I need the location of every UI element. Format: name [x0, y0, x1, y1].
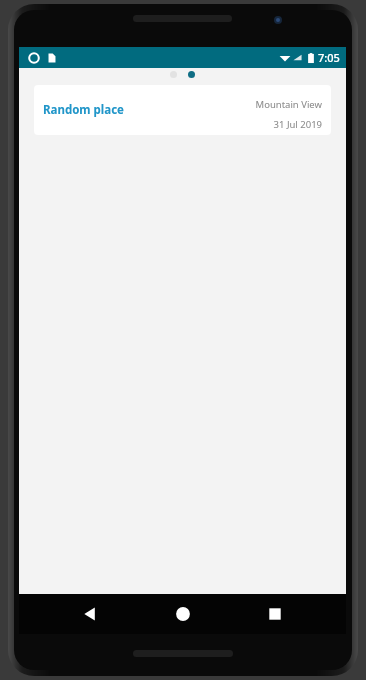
button[interactable]: Random place — [34, 85, 331, 135]
button[interactable]: Home — [168, 599, 198, 629]
staticText: Random place — [43, 102, 124, 118]
staticText: 31 Jul 2019 — [273, 118, 322, 131]
staticText: 7:05 — [318, 50, 340, 65]
button[interactable]: Recents — [260, 599, 290, 629]
button[interactable]: Back — [75, 599, 105, 629]
staticText: Mountain View — [255, 98, 322, 111]
